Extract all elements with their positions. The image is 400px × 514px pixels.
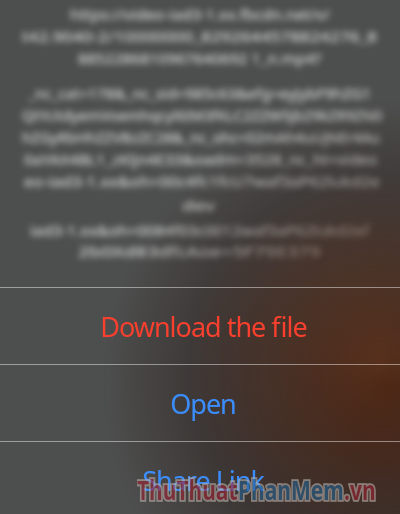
staticText: Download the file bbox=[100, 308, 307, 345]
staticText: .vn bbox=[344, 473, 376, 509]
staticText: PhanMem bbox=[238, 473, 344, 509]
staticText: Share Link bbox=[142, 462, 264, 499]
button[interactable]: Share Link bbox=[0, 442, 400, 514]
staticText: PhanMem bbox=[238, 473, 344, 509]
staticText: ThuThuat bbox=[137, 473, 238, 509]
staticText: ThuThuat bbox=[137, 473, 238, 509]
staticText: Open bbox=[170, 385, 236, 422]
staticText: .vn bbox=[344, 473, 376, 509]
button[interactable]: Open bbox=[0, 365, 400, 441]
button[interactable]: Download the file bbox=[0, 288, 400, 364]
